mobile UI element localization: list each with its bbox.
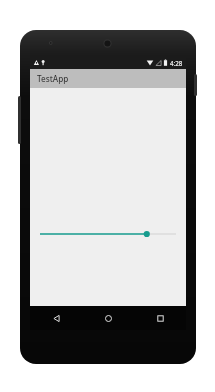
staticText: 4:28 <box>170 59 183 67</box>
button[interactable]: Back <box>30 306 82 330</box>
staticText: TestApp <box>37 73 69 84</box>
button[interactable]: Home <box>82 306 134 330</box>
button[interactable] <box>38 226 178 242</box>
button[interactable]: Recent apps <box>134 306 186 330</box>
